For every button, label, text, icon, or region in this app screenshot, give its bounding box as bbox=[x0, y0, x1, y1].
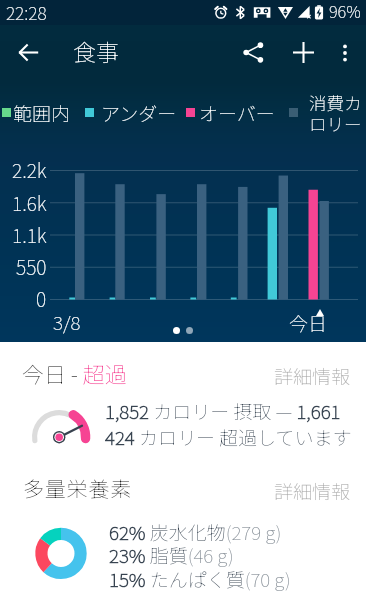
staticText: 多量栄養素 bbox=[23, 473, 132, 503]
staticText: 詳細情報 bbox=[274, 477, 351, 505]
button[interactable]: Back bbox=[6, 30, 51, 75]
button[interactable]: Add bbox=[281, 30, 326, 75]
staticText: 食事 bbox=[73, 34, 119, 67]
staticText: アンダー bbox=[101, 99, 177, 127]
staticText: 424 カロリー 超過しています bbox=[105, 423, 352, 451]
staticText: 消費カ ロリー bbox=[309, 90, 362, 136]
staticText: 23% 脂質(46 g) bbox=[109, 541, 234, 569]
button[interactable]: Share bbox=[231, 30, 276, 75]
button[interactable]: 今日 - 超過 bbox=[0, 346, 366, 390]
staticText: 1.1k bbox=[12, 220, 47, 248]
staticText: 1.6k bbox=[12, 188, 47, 216]
button[interactable]: 多量栄養素 bbox=[0, 463, 366, 505]
staticText: 詳細情報 bbox=[274, 362, 351, 390]
staticText: 0 bbox=[36, 284, 47, 312]
staticText: 15% たんぱく質(70 g) bbox=[109, 565, 291, 593]
staticText: 96% bbox=[329, 0, 361, 23]
staticText: 22:28 bbox=[6, 0, 47, 25]
staticText: 今日 bbox=[289, 309, 328, 337]
staticText: 今日 - 超過 bbox=[22, 357, 127, 389]
staticText: 範囲内 bbox=[13, 99, 71, 127]
staticText: 62% 炭水化物(279 g) bbox=[109, 518, 282, 546]
button[interactable]: More options bbox=[322, 30, 366, 75]
staticText: 2.2k bbox=[12, 155, 47, 183]
staticText: 3/8 bbox=[53, 308, 81, 336]
staticText: 550 bbox=[16, 252, 47, 280]
staticText: 1,852 カロリー 摂取 — 1,661 bbox=[105, 397, 341, 425]
staticText: オーバー bbox=[199, 99, 275, 127]
